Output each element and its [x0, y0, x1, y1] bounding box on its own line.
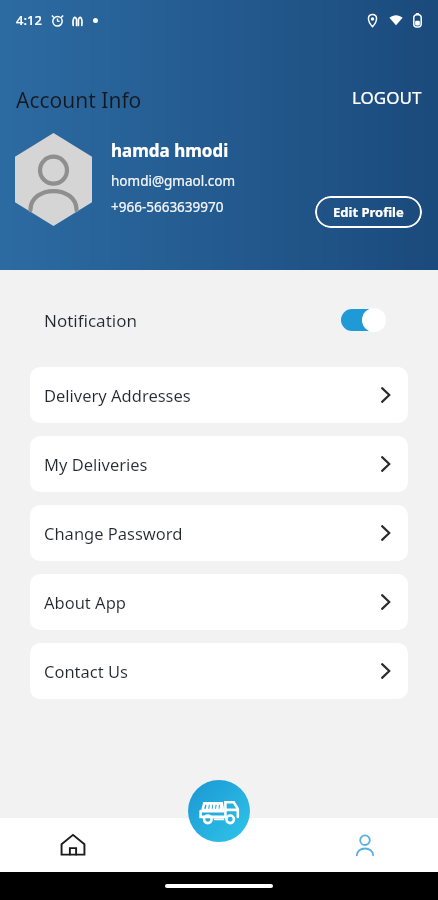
- other: Notification enabled: [340, 308, 386, 332]
- button[interactable]: Contact Us: [30, 643, 408, 699]
- staticText: Change Password: [44, 522, 183, 544]
- staticText: +966-5663639970: [111, 198, 224, 216]
- staticText: Notification: [44, 309, 137, 332]
- staticText: 4:12: [16, 11, 42, 29]
- staticText: My Deliveries: [44, 453, 148, 475]
- button[interactable]: Change Password: [30, 505, 408, 561]
- button[interactable]: Notification: [0, 303, 438, 337]
- button[interactable]: About App: [30, 574, 408, 630]
- button[interactable]: My Deliveries: [30, 436, 408, 492]
- staticText: Delivery Addresses: [44, 384, 191, 406]
- staticText: Contact Us: [44, 660, 128, 682]
- button[interactable]: Home: [0, 818, 146, 872]
- staticText: LOGOUT: [352, 86, 422, 109]
- button[interactable]: Account: [292, 818, 438, 872]
- staticText: hamda hmodi: [111, 139, 229, 162]
- button[interactable]: LOGOUT: [336, 78, 438, 117]
- staticText: homdi@gmaol.com: [111, 172, 236, 190]
- staticText: About App: [44, 591, 126, 613]
- button[interactable]: Deliveries: [188, 780, 250, 842]
- button[interactable]: Delivery Addresses: [30, 367, 408, 423]
- staticText: Edit Profile: [333, 203, 404, 221]
- button[interactable]: Edit Profile: [315, 196, 422, 228]
- staticText: Account Info: [16, 86, 142, 115]
